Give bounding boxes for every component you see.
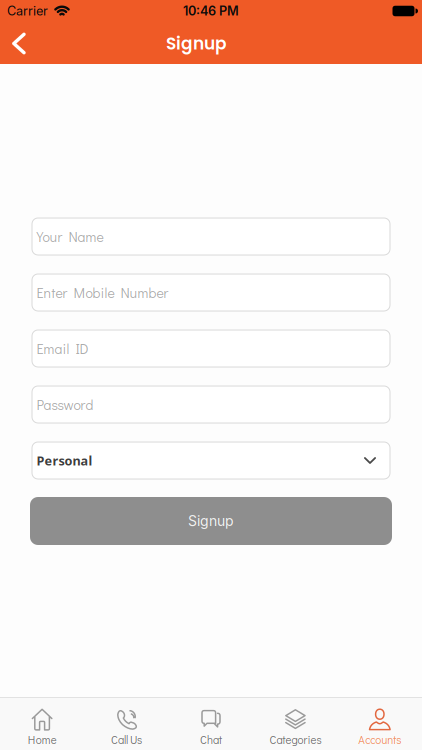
button[interactable]: Email ID text field bbox=[32, 330, 390, 367]
staticText: Categories bbox=[269, 732, 321, 747]
staticText: Your Name bbox=[36, 227, 103, 246]
button[interactable]: Home bbox=[0, 698, 84, 750]
button[interactable]: Password text field bbox=[32, 386, 390, 423]
staticText: Accounts bbox=[358, 732, 401, 747]
staticText: Signup bbox=[166, 32, 227, 55]
button[interactable]: Signup bbox=[30, 497, 392, 545]
staticText: Call Us bbox=[111, 732, 142, 747]
button[interactable]: Personal bbox=[32, 442, 390, 479]
staticText: Email ID bbox=[36, 339, 88, 358]
staticText: Personal bbox=[36, 452, 92, 469]
staticText: 10:46 PM bbox=[183, 3, 239, 19]
button[interactable]: Accounts bbox=[338, 698, 422, 750]
staticText: Signup bbox=[188, 512, 234, 529]
staticText: Carrier bbox=[7, 3, 48, 19]
staticText: Enter Mobile Number bbox=[36, 283, 168, 302]
staticText: Password bbox=[36, 395, 93, 414]
button[interactable]: Categories bbox=[253, 698, 338, 750]
button[interactable]: Enter Mobile Number text field bbox=[32, 274, 390, 311]
button[interactable]: Back bbox=[0, 27, 26, 63]
staticText: Home bbox=[28, 732, 57, 747]
button[interactable]: Chat bbox=[169, 698, 253, 750]
staticText: Chat bbox=[200, 732, 222, 747]
button[interactable]: Call Us bbox=[84, 698, 169, 750]
button[interactable]: Your Name text field bbox=[32, 218, 390, 255]
